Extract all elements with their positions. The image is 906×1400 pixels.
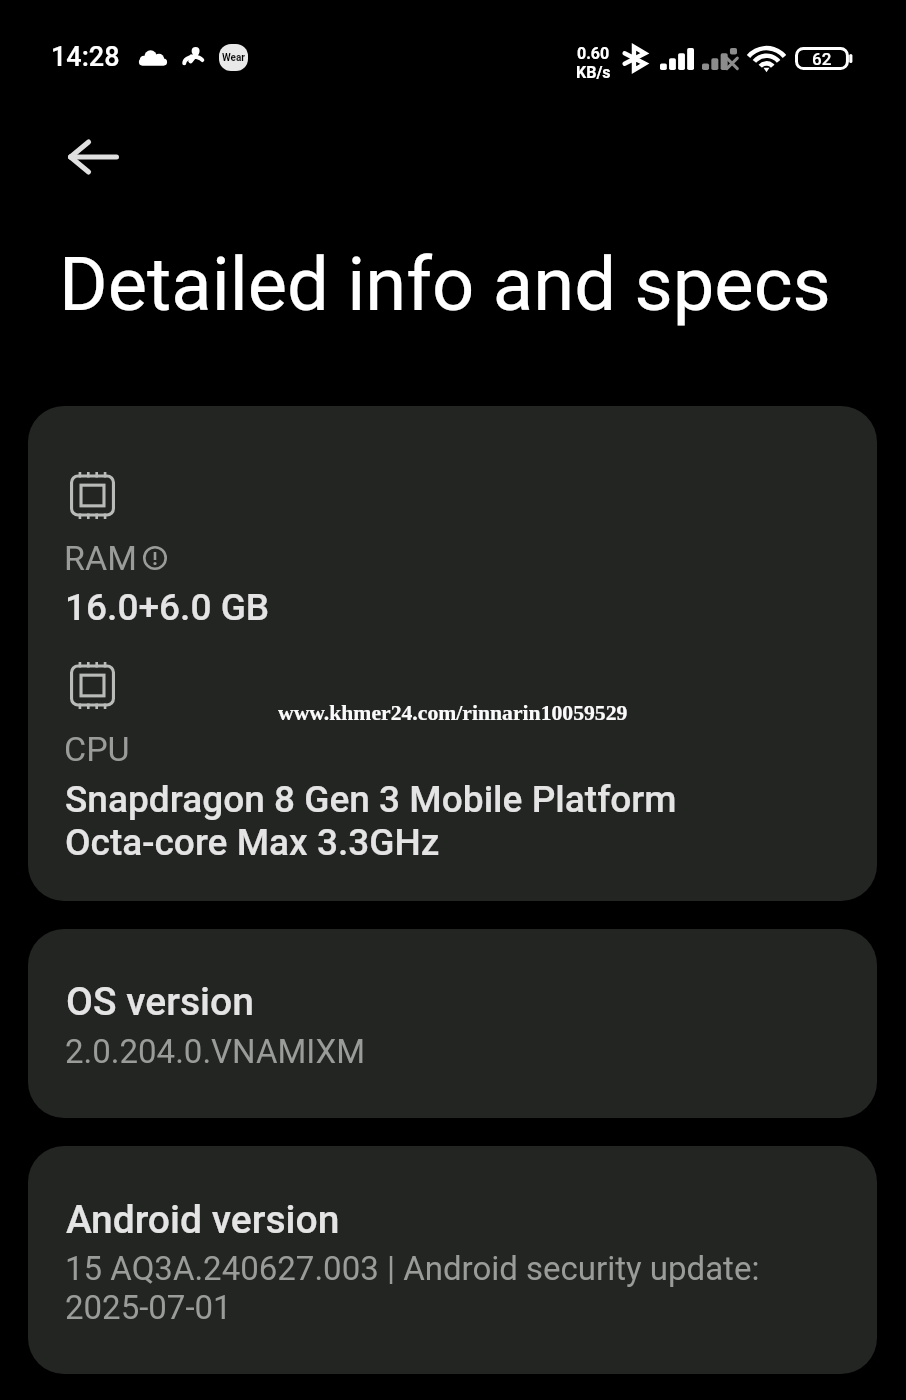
staticText: KB/s <box>576 63 611 82</box>
staticText: www.khmer24.com/rinnarin10059529 <box>278 701 628 725</box>
staticText: 15 AQ3A.240627.003 | Android security up… <box>65 1249 760 1327</box>
staticText: 14:28 <box>51 41 120 73</box>
staticText: Android version <box>66 1197 340 1243</box>
staticText: 0.60 <box>577 44 610 63</box>
staticText: CPU <box>64 729 130 769</box>
button[interactable]: Android version <box>28 1146 877 1374</box>
staticText: RAM <box>64 538 137 578</box>
staticText: 16.0+6.0 GB <box>65 586 270 629</box>
button[interactable]: Back <box>57 121 129 193</box>
staticText: Wear <box>222 52 246 64</box>
button[interactable]: RAM <box>28 406 877 901</box>
staticText: Snapdragon 8 Gen 3 Mobile Platform Octa-… <box>65 778 677 864</box>
staticText: 2.0.204.0.VNAMIXM <box>65 1032 366 1071</box>
button[interactable]: OS version <box>28 929 877 1118</box>
staticText: 62 <box>812 49 832 69</box>
staticText: OS version <box>66 979 254 1025</box>
staticText: Detailed info and specs <box>59 241 831 328</box>
